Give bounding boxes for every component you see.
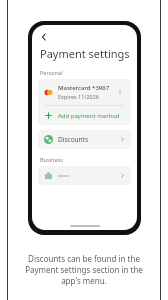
staticText: Payment settings xyxy=(40,46,130,61)
button[interactable] xyxy=(38,166,131,185)
staticText: Business xyxy=(40,156,63,163)
button[interactable]: Back xyxy=(37,30,50,43)
staticText: Personal xyxy=(40,69,63,76)
button[interactable]: Discounts xyxy=(38,130,131,149)
button[interactable]: Add payment method xyxy=(38,106,131,125)
staticText: Mastercard *3967 xyxy=(58,84,110,92)
staticText: Discounts can be found in the Payment se… xyxy=(24,253,144,286)
staticText: Discounts xyxy=(58,135,120,144)
staticText: Add payment method xyxy=(58,112,120,120)
button[interactable]: More options xyxy=(115,87,125,97)
button[interactable]: Mastercard *3967 xyxy=(38,79,131,105)
staticText: Expires 11/2026 xyxy=(58,93,100,100)
